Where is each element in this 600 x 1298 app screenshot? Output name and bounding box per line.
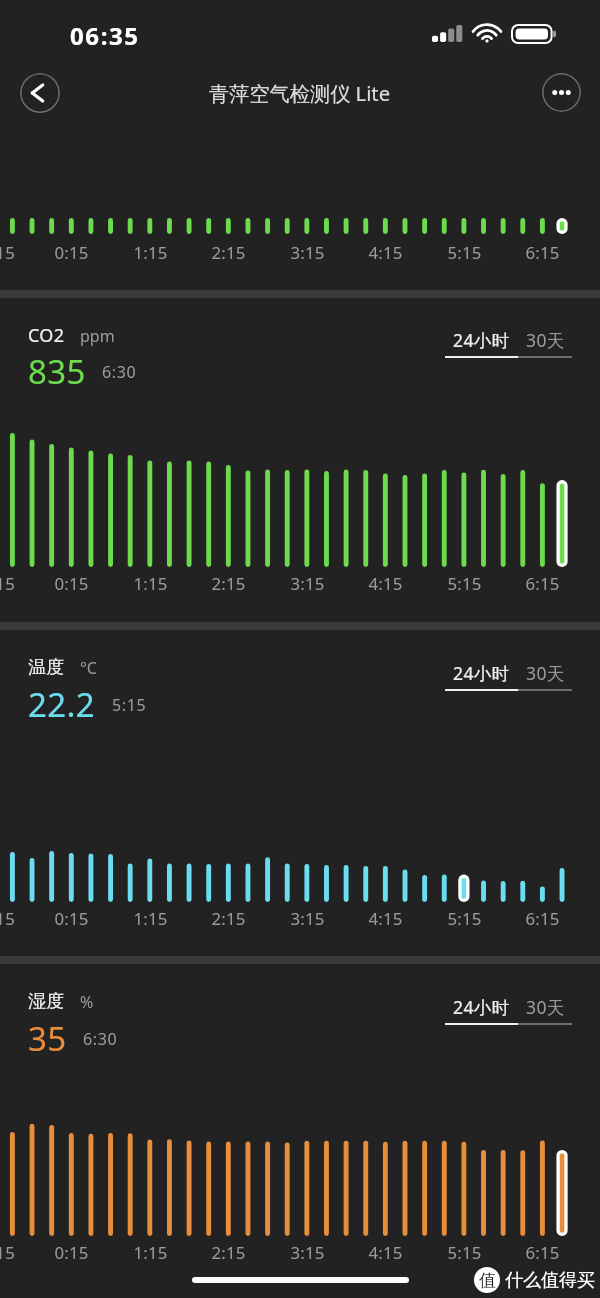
staticText: 湿度 xyxy=(28,990,65,1013)
staticText: 2:15 xyxy=(211,572,246,595)
staticText: 5:15 xyxy=(447,572,482,595)
button[interactable]: 24小时 xyxy=(445,328,518,358)
staticText: 1:15 xyxy=(133,572,168,595)
staticText: 06:35 xyxy=(70,19,140,52)
staticText: 6:15 xyxy=(525,1241,560,1264)
staticText: 1:15 xyxy=(133,241,168,264)
staticText: 3:15 xyxy=(290,572,325,595)
staticText: 23:15 xyxy=(0,572,15,595)
staticText: ppm xyxy=(80,325,115,347)
staticText: 5:15 xyxy=(112,694,147,716)
staticText: 温度 xyxy=(28,656,65,679)
staticText: 0:15 xyxy=(54,1241,89,1264)
button[interactable]: 24小时 xyxy=(445,661,518,691)
staticText: 1:15 xyxy=(133,1241,168,1264)
staticText: 6:30 xyxy=(102,361,137,383)
staticText: 5:15 xyxy=(447,241,482,264)
staticText: 23:15 xyxy=(0,907,15,930)
staticText: 35 xyxy=(28,1016,67,1061)
staticText: 青萍空气检测仪 Lite xyxy=(209,79,391,107)
staticText: % xyxy=(80,991,94,1013)
staticText: 0:15 xyxy=(54,907,89,930)
staticText: 30天 xyxy=(526,995,565,1019)
button[interactable]: 30天 xyxy=(518,995,572,1025)
button[interactable]: 24小时 xyxy=(445,995,518,1025)
staticText: 4:15 xyxy=(368,907,403,930)
staticText: 2:15 xyxy=(211,1241,246,1264)
staticText: 0:15 xyxy=(54,572,89,595)
button[interactable]: 30天 xyxy=(518,328,572,358)
staticText: 24小时 xyxy=(453,661,510,685)
staticText: 24小时 xyxy=(453,328,510,352)
staticText: 1:15 xyxy=(133,907,168,930)
staticText: 4:15 xyxy=(368,241,403,264)
staticText: 什么值得买 xyxy=(505,1269,595,1292)
staticText: 30天 xyxy=(526,328,565,352)
staticText: 23:15 xyxy=(0,241,15,264)
staticText: 4:15 xyxy=(368,1241,403,1264)
staticText: 30天 xyxy=(526,661,565,685)
button[interactable]: Back xyxy=(20,73,60,113)
staticText: °C xyxy=(80,657,97,679)
button[interactable]: More options xyxy=(542,73,581,112)
staticText: 值 xyxy=(479,1270,496,1291)
staticText: 2:15 xyxy=(211,241,246,264)
staticText: 4:15 xyxy=(368,572,403,595)
staticText: 3:15 xyxy=(290,241,325,264)
staticText: 835 xyxy=(28,349,86,394)
staticText: 6:15 xyxy=(525,241,560,264)
staticText: 23:15 xyxy=(0,1241,15,1264)
staticText: 5:15 xyxy=(447,907,482,930)
staticText: 3:15 xyxy=(290,1241,325,1264)
staticText: CO2 xyxy=(28,323,65,348)
staticText: 3:15 xyxy=(290,907,325,930)
staticText: 6:30 xyxy=(83,1028,118,1050)
staticText: 2:15 xyxy=(211,907,246,930)
staticText: 22.2 xyxy=(28,682,96,727)
staticText: 6:15 xyxy=(525,907,560,930)
button[interactable]: 30天 xyxy=(518,661,572,691)
staticText: 6:15 xyxy=(525,572,560,595)
staticText: 5:15 xyxy=(447,1241,482,1264)
staticText: 0:15 xyxy=(54,241,89,264)
staticText: 24小时 xyxy=(453,995,510,1019)
